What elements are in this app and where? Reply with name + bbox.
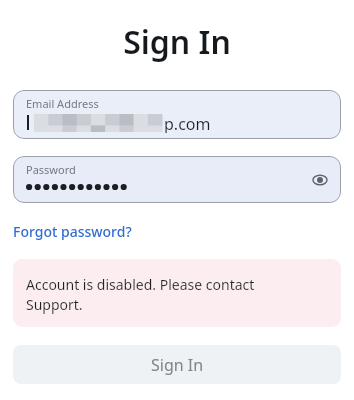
button[interactable]: Forgot password? (13, 221, 132, 242)
staticText: Account is disabled. Please contact Supp… (26, 275, 301, 315)
button[interactable]: Sign In (13, 345, 341, 384)
staticText: Password (26, 162, 76, 177)
staticText: p.com (164, 113, 211, 133)
button[interactable]: Show password (307, 167, 333, 193)
button[interactable]: Email Address (13, 90, 341, 139)
staticText: Email Address (26, 96, 99, 111)
button[interactable]: Password (13, 156, 341, 203)
staticText: Sign In (0, 20, 354, 64)
staticText: Sign In (151, 354, 204, 376)
staticText: Forgot password? (13, 222, 132, 241)
